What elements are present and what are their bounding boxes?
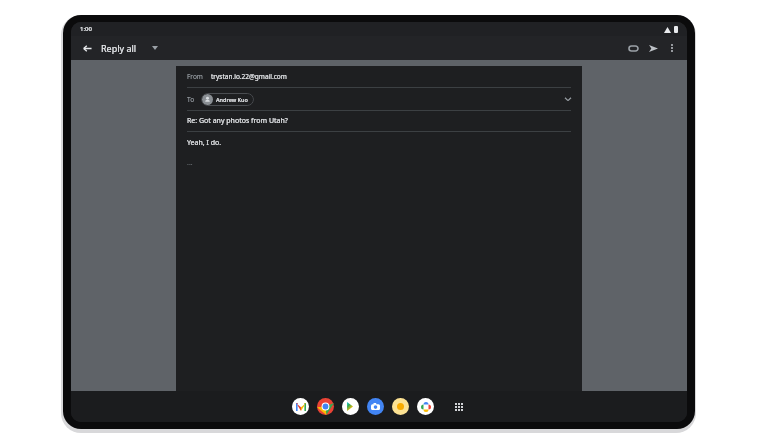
button[interactable]: Change reply type xyxy=(147,40,163,56)
button[interactable]: Send xyxy=(644,39,662,57)
button[interactable]: Wallet xyxy=(391,397,410,416)
staticText: trystan.io.22@gmail.com xyxy=(211,72,287,81)
button[interactable]: Photos xyxy=(416,397,435,416)
button[interactable]: Andrew Kuo xyxy=(201,93,254,106)
button[interactable]: To xyxy=(176,88,582,110)
button[interactable]: Attach file xyxy=(624,39,642,57)
staticText: From xyxy=(187,72,203,81)
staticText: 1:00 xyxy=(80,25,92,33)
button[interactable]: From xyxy=(176,66,582,87)
button[interactable]: All apps xyxy=(451,399,467,415)
staticText: Andrew Kuo xyxy=(216,96,248,103)
staticText: ... xyxy=(187,158,193,168)
button[interactable]: Chrome xyxy=(316,397,335,416)
button[interactable]: Back xyxy=(77,38,97,58)
button[interactable]: Camera xyxy=(366,397,385,416)
button[interactable]: Re: Got any photos from Utah? xyxy=(176,111,582,131)
button[interactable]: Play Store xyxy=(341,397,360,416)
button[interactable]: Yeah, I do. xyxy=(176,132,582,154)
staticText: Reply all xyxy=(101,42,137,54)
staticText: Re: Got any photos from Utah? xyxy=(187,116,288,126)
button[interactable]: More options xyxy=(663,39,681,57)
button[interactable]: Gmail xyxy=(291,397,310,416)
staticText: Yeah, I do. xyxy=(187,138,222,148)
staticText: To xyxy=(187,95,195,104)
